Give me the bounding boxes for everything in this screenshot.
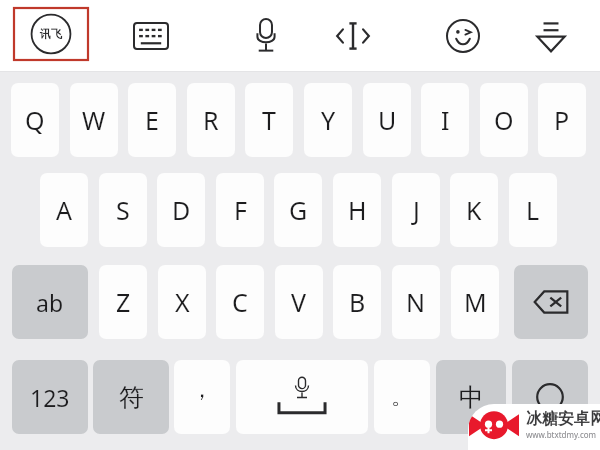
- button[interactable]: U: [363, 83, 411, 157]
- button[interactable]: Hide keyboard: [524, 10, 578, 62]
- button[interactable]: G: [274, 173, 322, 247]
- staticText: P: [554, 103, 570, 137]
- button[interactable]: N: [392, 265, 440, 339]
- button[interactable]: 中: [436, 360, 506, 434]
- button[interactable]: J: [392, 173, 440, 247]
- staticText: J: [413, 193, 420, 227]
- staticText: 冰糖安卓网: [526, 409, 600, 429]
- staticText: A: [56, 193, 72, 227]
- staticText: www.btxtdmy.com: [526, 429, 597, 440]
- staticText: C: [232, 285, 248, 319]
- staticText: K: [466, 193, 482, 227]
- button[interactable]: Y: [304, 83, 352, 157]
- staticText: L: [526, 193, 540, 227]
- button[interactable]: ，: [174, 360, 230, 434]
- staticText: D: [172, 193, 191, 227]
- staticText: O: [494, 103, 514, 137]
- staticText: E: [145, 103, 159, 137]
- button[interactable]: Voice input: [240, 10, 292, 62]
- staticText: R: [203, 103, 219, 137]
- button[interactable]: 。: [374, 360, 430, 434]
- staticText: Q: [25, 103, 45, 137]
- button[interactable]: T: [245, 83, 293, 157]
- staticText: S: [116, 193, 130, 227]
- button[interactable]: Emoji: [437, 10, 489, 62]
- button[interactable]: Backspace: [514, 265, 588, 339]
- button[interactable]: Z: [99, 265, 147, 339]
- button[interactable]: O: [480, 83, 528, 157]
- staticText: V: [291, 285, 307, 319]
- staticText: ab: [36, 287, 64, 318]
- button[interactable]: V: [275, 265, 323, 339]
- button[interactable]: W: [70, 83, 118, 157]
- button[interactable]: L: [509, 173, 557, 247]
- button[interactable]: Q: [11, 83, 59, 157]
- staticText: 。: [391, 383, 413, 411]
- button[interactable]: 123: [12, 360, 88, 434]
- button[interactable]: M: [451, 265, 499, 339]
- staticText: Y: [321, 103, 336, 137]
- staticText: I: [441, 103, 450, 137]
- button[interactable]: C: [216, 265, 264, 339]
- staticText: ，: [191, 376, 213, 404]
- button[interactable]: X: [158, 265, 206, 339]
- button[interactable]: H: [333, 173, 381, 247]
- staticText: 讯飞: [40, 27, 62, 41]
- button[interactable]: K: [450, 173, 498, 247]
- button[interactable]: A: [40, 173, 88, 247]
- staticText: H: [348, 193, 367, 227]
- staticText: N: [406, 285, 426, 319]
- button[interactable]: B: [333, 265, 381, 339]
- staticText: Z: [116, 285, 131, 319]
- button[interactable]: E: [128, 83, 176, 157]
- staticText: M: [464, 285, 487, 319]
- button[interactable]: 符: [93, 360, 169, 434]
- button[interactable]: Edit cursor: [325, 10, 381, 62]
- staticText: W: [82, 103, 106, 137]
- staticText: 符: [119, 382, 144, 413]
- staticText: U: [378, 103, 397, 137]
- staticText: B: [349, 285, 366, 319]
- button[interactable]: F: [216, 173, 264, 247]
- button[interactable]: R: [187, 83, 235, 157]
- button[interactable]: P: [538, 83, 586, 157]
- staticText: 中: [459, 382, 484, 413]
- staticText: F: [234, 193, 247, 227]
- button[interactable]: S: [99, 173, 147, 247]
- button[interactable]: ab: [12, 265, 88, 339]
- button[interactable]: Keyboard layout: [122, 14, 180, 58]
- button[interactable]: I: [421, 83, 469, 157]
- staticText: 123: [30, 382, 70, 413]
- button[interactable]: Space: [236, 360, 368, 434]
- staticText: X: [175, 285, 190, 319]
- button[interactable]: Enter: [512, 360, 588, 434]
- button[interactable]: iFlytek input method: [13, 7, 89, 61]
- button[interactable]: D: [157, 173, 205, 247]
- staticText: T: [262, 103, 276, 137]
- staticText: G: [289, 193, 308, 227]
